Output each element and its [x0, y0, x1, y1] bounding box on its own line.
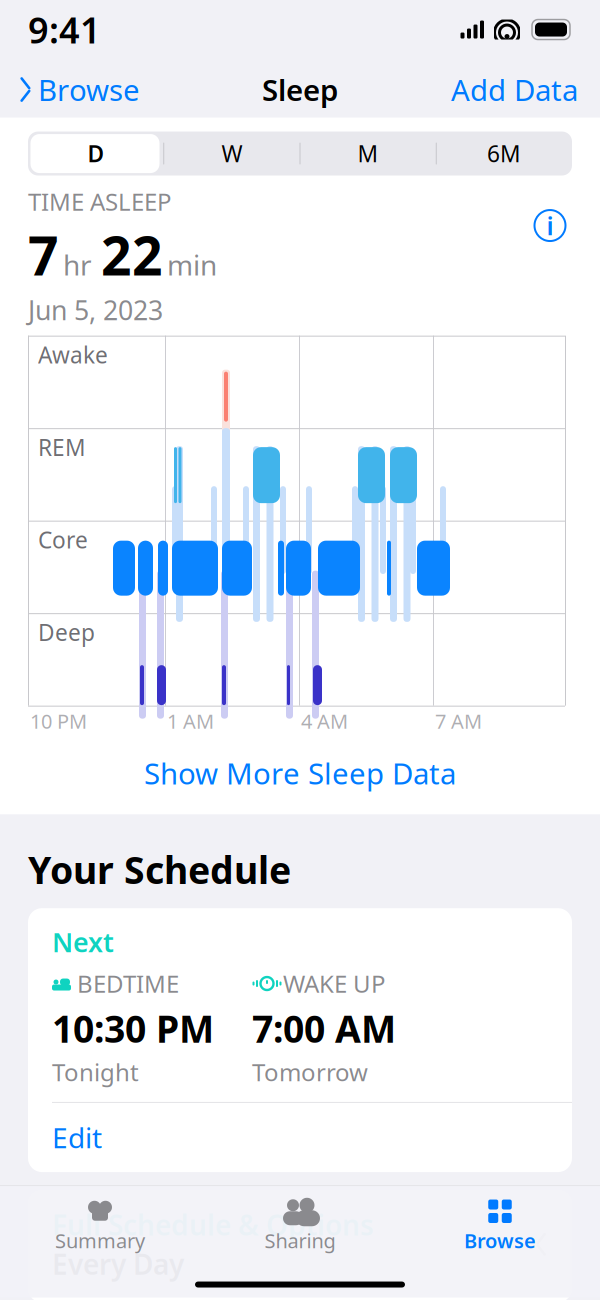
- button[interactable]: 6M: [436, 131, 572, 175]
- staticText: Sleep: [262, 70, 338, 109]
- staticText: Deep: [38, 617, 95, 647]
- button[interactable]: Full Schedule & Options: [28, 1190, 572, 1300]
- staticText: Full Schedule & Options: [52, 1206, 374, 1243]
- staticText: Tonight: [52, 1056, 139, 1088]
- staticText: min: [167, 246, 217, 283]
- button[interactable]: Edit: [28, 1103, 572, 1172]
- staticText: Tomorrow: [252, 1056, 368, 1088]
- staticText: D: [87, 138, 104, 169]
- staticText: Next: [52, 924, 114, 960]
- staticText: WAKE UP: [283, 968, 386, 999]
- staticText: TIME ASLEEP: [28, 185, 172, 217]
- staticText: Edit: [52, 1119, 102, 1156]
- staticText: 22: [101, 219, 163, 290]
- staticText: Every Day: [52, 1245, 184, 1282]
- button[interactable]: W: [164, 131, 300, 175]
- staticText: hr: [63, 246, 92, 283]
- button[interactable]: Browse: [400, 1190, 600, 1254]
- staticText: 10:30 PM: [52, 1003, 214, 1053]
- staticText: 6M: [487, 138, 521, 169]
- staticText: Add Data: [451, 70, 578, 109]
- staticText: Sharing: [264, 1227, 335, 1254]
- button[interactable]: Summary: [0, 1190, 200, 1254]
- staticText: Browse: [38, 70, 140, 109]
- button[interactable]: Sharing: [200, 1190, 400, 1254]
- button[interactable]: D: [28, 131, 164, 175]
- staticText: 10 PM: [30, 708, 87, 734]
- staticText: Show More Sleep Data: [144, 754, 456, 793]
- staticText: 4 AM: [301, 708, 348, 734]
- staticText: Summary: [55, 1227, 145, 1254]
- button[interactable]: Show More Sleep Data: [0, 732, 600, 815]
- staticText: Core: [38, 525, 88, 555]
- staticText: Awake: [38, 340, 108, 370]
- staticText: M: [357, 138, 378, 169]
- staticText: Browse: [464, 1227, 536, 1254]
- staticText: 9:41: [28, 6, 101, 53]
- staticText: W: [221, 138, 242, 169]
- staticText: 7 AM: [435, 708, 482, 734]
- staticText: Your Schedule: [28, 845, 291, 894]
- button[interactable]: About Time Asleep: [528, 203, 572, 247]
- staticText: i: [546, 209, 553, 242]
- staticText: 7: [28, 219, 59, 290]
- staticText: 7:00 AM: [252, 1003, 396, 1053]
- button[interactable]: Add Data: [451, 62, 600, 117]
- staticText: Jun 5, 2023: [28, 292, 163, 328]
- button[interactable]: Browse: [0, 62, 140, 117]
- staticText: 1 AM: [167, 708, 214, 734]
- staticText: BEDTIME: [77, 968, 179, 999]
- staticText: REM: [38, 432, 86, 462]
- button[interactable]: M: [300, 131, 436, 175]
